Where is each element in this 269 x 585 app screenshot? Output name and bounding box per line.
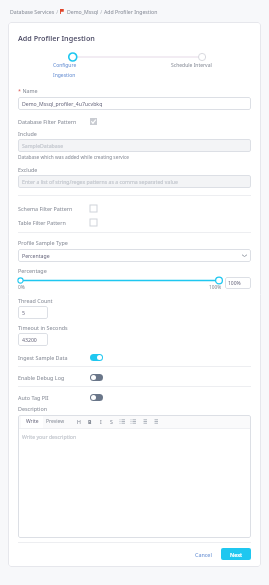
button[interactable]: B xyxy=(84,416,95,427)
staticText: Next xyxy=(230,551,243,558)
staticText: Percentage xyxy=(18,267,47,274)
button[interactable]: Next xyxy=(221,548,251,560)
button[interactable]: Percentage xyxy=(18,249,251,262)
staticText: SampleDatabase xyxy=(22,142,64,149)
staticText: Timeout in Seconds xyxy=(18,324,68,331)
staticText: Schema Filter Pattern xyxy=(18,205,73,212)
staticText: Cancel xyxy=(195,551,212,558)
staticText: Include xyxy=(18,130,37,137)
staticText: Enter a list of string/regex patterns as… xyxy=(22,178,178,185)
button[interactable]: Schedule Interval xyxy=(171,62,212,69)
button[interactable]: 100% xyxy=(225,277,251,289)
button[interactable]: Database Services xyxy=(10,8,55,15)
staticText: Exclude xyxy=(18,166,38,173)
button[interactable]: S xyxy=(106,416,117,427)
staticText: 5 xyxy=(22,309,25,316)
staticText: 0% xyxy=(18,284,25,291)
staticText: Configure xyxy=(53,62,77,69)
button[interactable]: Number list xyxy=(128,416,139,427)
staticText: Name xyxy=(21,87,38,94)
staticText: Description xyxy=(18,405,48,412)
staticText: Ingestion xyxy=(53,72,76,79)
button[interactable]: checkbox xyxy=(90,205,97,212)
staticText: Database Filter Pattern xyxy=(18,118,77,125)
staticText: Auto Tag PII xyxy=(18,394,49,401)
button[interactable]: Code xyxy=(150,416,161,427)
staticText: 100% xyxy=(209,284,222,291)
button[interactable]: Link xyxy=(139,416,150,427)
button[interactable]: H xyxy=(73,416,84,427)
button[interactable]: SampleDatabase xyxy=(18,139,251,152)
staticText: / xyxy=(99,8,104,15)
button[interactable]: Configure xyxy=(53,62,93,79)
button[interactable]: Bullet list xyxy=(117,416,128,427)
button[interactable]: 43200 xyxy=(18,333,48,346)
staticText: Write your description xyxy=(22,433,77,440)
button[interactable]: toggle xyxy=(90,374,103,381)
button[interactable]: 5 xyxy=(18,306,48,319)
button[interactable]: checkbox xyxy=(90,219,97,226)
staticText: Schedule Interval xyxy=(171,62,212,69)
staticText: Preview xyxy=(46,418,65,425)
staticText: Demo_Mssql xyxy=(67,8,99,15)
staticText: B xyxy=(88,418,92,425)
button[interactable]: Write xyxy=(21,415,43,428)
button[interactable]: Enter a list of string/regex patterns as… xyxy=(18,175,251,188)
button[interactable]: Cancel xyxy=(190,548,217,561)
button[interactable]: Demo_Mssql xyxy=(67,8,99,15)
button[interactable]: Demo_Mssql_profiler_4u7ucvbkq xyxy=(18,97,251,110)
staticText: Ingest Sample Data xyxy=(18,354,68,361)
staticText: / xyxy=(55,8,60,15)
button[interactable]: Preview xyxy=(43,415,67,428)
staticText: Database Services xyxy=(10,8,55,15)
staticText: Add Profiler Ingestion xyxy=(104,8,158,15)
staticText: Write xyxy=(26,418,39,425)
staticText: Table Filter Pattern xyxy=(18,219,66,226)
button[interactable]: toggle xyxy=(90,354,103,361)
staticText: 43200 xyxy=(22,336,37,343)
staticText: Database which was added while creating … xyxy=(18,154,130,161)
staticText: Thread Count xyxy=(18,297,53,304)
staticText: H xyxy=(77,418,81,425)
staticText: Add Profiler Ingestion xyxy=(18,33,95,43)
staticText: Percentage xyxy=(22,252,50,259)
staticText: S xyxy=(110,418,113,425)
staticText: Enable Debug Log xyxy=(18,374,65,381)
staticText: I xyxy=(100,418,102,425)
staticText: Demo_Mssql_profiler_4u7ucvbkq xyxy=(22,100,103,107)
button[interactable] xyxy=(18,277,222,284)
button[interactable]: toggle xyxy=(90,394,103,401)
staticText: Profile Sample Type xyxy=(18,239,68,246)
button[interactable]: Write your description xyxy=(18,429,251,538)
staticText: 100% xyxy=(228,280,241,287)
staticText: * xyxy=(18,87,21,94)
button[interactable]: checkbox xyxy=(90,118,97,125)
button[interactable]: I xyxy=(95,416,106,427)
